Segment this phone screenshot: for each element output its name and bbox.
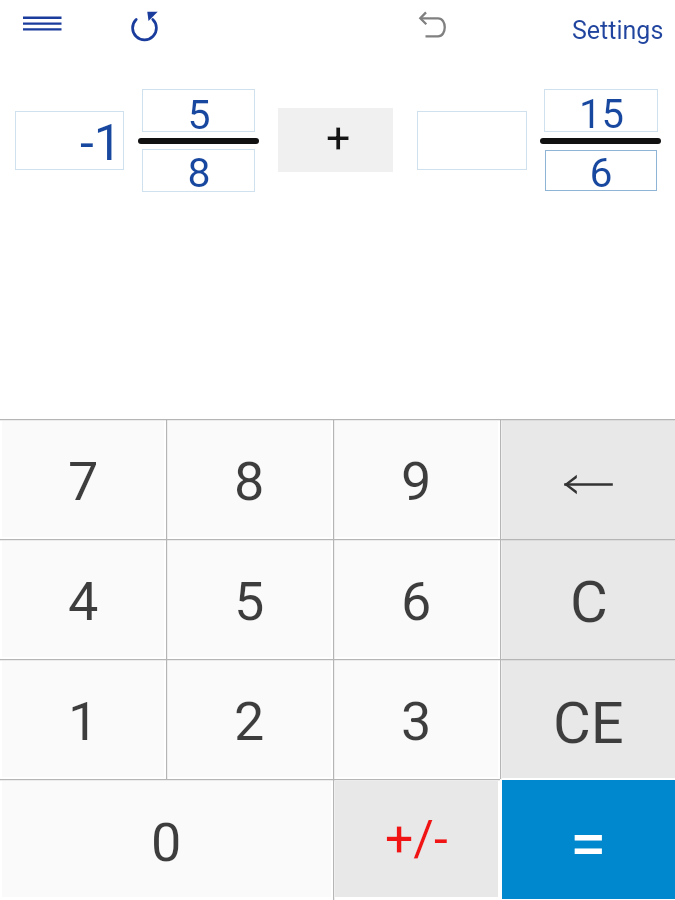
staticText: 15 — [579, 91, 624, 134]
button[interactable]: Undo — [408, 4, 456, 52]
staticText: 2 — [234, 690, 265, 753]
staticText: 5 — [187, 91, 211, 134]
button[interactable]: 3 — [335, 661, 498, 777]
button[interactable]: 1 — [2, 661, 164, 777]
staticText: 4 — [68, 570, 99, 633]
staticText: 8 — [234, 450, 265, 513]
button[interactable]: 15 — [544, 89, 658, 132]
staticText: + — [326, 113, 351, 163]
staticText: 9 — [401, 450, 432, 513]
staticText: Settings — [572, 16, 664, 45]
button[interactable]: 2 — [168, 661, 331, 777]
button[interactable]: = — [502, 780, 675, 899]
staticText: CE — [553, 689, 624, 757]
button[interactable]: Settings — [560, 4, 675, 48]
button[interactable] — [417, 111, 527, 170]
staticText: C — [570, 568, 608, 636]
button[interactable]: 6 — [335, 541, 498, 657]
button[interactable]: + — [278, 108, 393, 172]
button[interactable]: Backspace — [502, 420, 675, 539]
button[interactable]: 9 — [335, 421, 498, 537]
button[interactable]: 0 — [2, 781, 331, 897]
button[interactable]: 8 — [168, 421, 331, 537]
button[interactable]: Menu — [4, 3, 80, 51]
button[interactable]: C — [502, 540, 675, 659]
button[interactable]: 6 — [545, 150, 657, 191]
button[interactable]: +/- — [335, 781, 498, 897]
button[interactable]: -1 — [15, 111, 124, 170]
button[interactable]: 8 — [142, 149, 255, 192]
button[interactable]: CE — [502, 660, 675, 779]
button[interactable]: 5 — [168, 541, 331, 657]
staticText: -1 — [80, 114, 122, 173]
staticText: 3 — [401, 690, 432, 753]
staticText: 5 — [234, 570, 265, 633]
staticText: +/- — [385, 810, 448, 869]
staticText: 6 — [401, 570, 432, 633]
button[interactable]: 5 — [142, 89, 255, 132]
staticText: 7 — [68, 450, 99, 513]
staticText: 8 — [187, 149, 211, 192]
staticText: 0 — [151, 811, 182, 874]
staticText: = — [570, 806, 607, 883]
button[interactable]: 7 — [2, 421, 164, 537]
staticText: 1 — [68, 690, 99, 753]
staticText: 6 — [589, 149, 613, 190]
button[interactable]: Reset — [120, 4, 168, 52]
button[interactable]: 4 — [2, 541, 164, 657]
